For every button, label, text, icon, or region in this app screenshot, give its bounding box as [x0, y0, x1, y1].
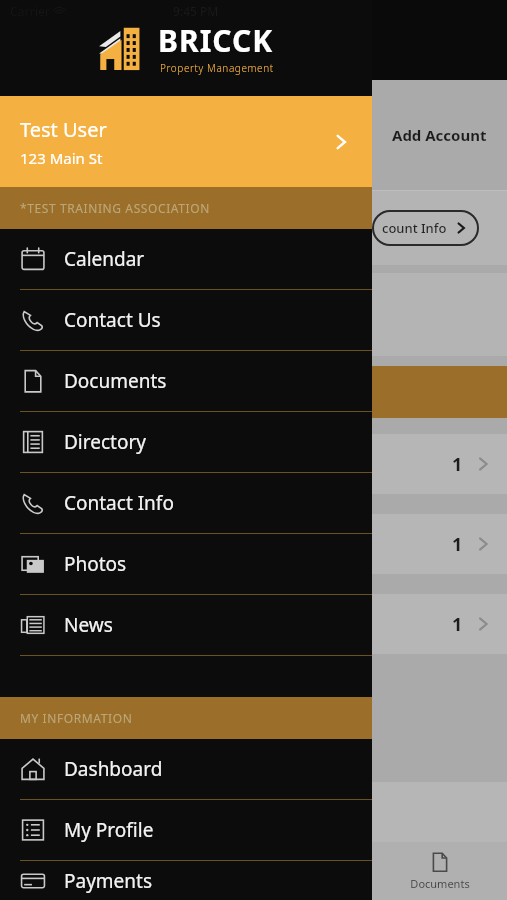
staticText: count Info: [382, 219, 447, 237]
button[interactable]: Documents: [0, 351, 372, 411]
button[interactable]: Test User: [0, 96, 372, 187]
button[interactable]: Documents tab: [372, 842, 507, 900]
button[interactable]: My Profile: [0, 800, 372, 860]
button[interactable]: 1: [372, 514, 507, 574]
staticText: Property Management: [160, 61, 274, 75]
staticText: 1: [452, 612, 463, 637]
button[interactable]: Calendar: [0, 229, 372, 289]
staticText: Payments: [64, 868, 153, 894]
staticText: 123 Main St: [20, 148, 103, 168]
staticText: MY INFORMATION: [20, 710, 133, 726]
staticText: Test User: [20, 116, 107, 143]
button[interactable]: 1: [372, 434, 507, 494]
button[interactable]: count Info: [372, 210, 479, 246]
button[interactable]: 1: [372, 594, 507, 654]
staticText: 1: [452, 532, 463, 557]
staticText: Photos: [64, 551, 127, 577]
staticText: *TEST TRAINING ASSOCIATION: [20, 200, 210, 216]
button[interactable]: Directory: [0, 412, 372, 472]
button[interactable]: Contact Us: [0, 290, 372, 350]
button[interactable]: Photos: [0, 534, 372, 594]
staticText: Documents: [410, 876, 470, 891]
staticText: Contact Us: [64, 307, 161, 333]
staticText: 1: [452, 452, 463, 477]
button[interactable]: Payments: [0, 861, 372, 900]
staticText: My Profile: [64, 817, 154, 843]
staticText: Calendar: [64, 246, 145, 272]
staticText: Documents: [64, 368, 167, 394]
button[interactable]: News: [0, 595, 372, 655]
staticText: News: [64, 612, 113, 638]
staticText: BRICCK: [158, 20, 274, 61]
button[interactable]: Contact Info: [0, 473, 372, 533]
staticText: Dashboard: [64, 756, 163, 782]
button[interactable]: Dashboard: [0, 739, 372, 799]
staticText: Contact Info: [64, 490, 174, 516]
staticText: Directory: [64, 429, 146, 455]
staticText: 9:45 PM: [173, 3, 219, 19]
staticText: Add Account: [392, 125, 487, 145]
